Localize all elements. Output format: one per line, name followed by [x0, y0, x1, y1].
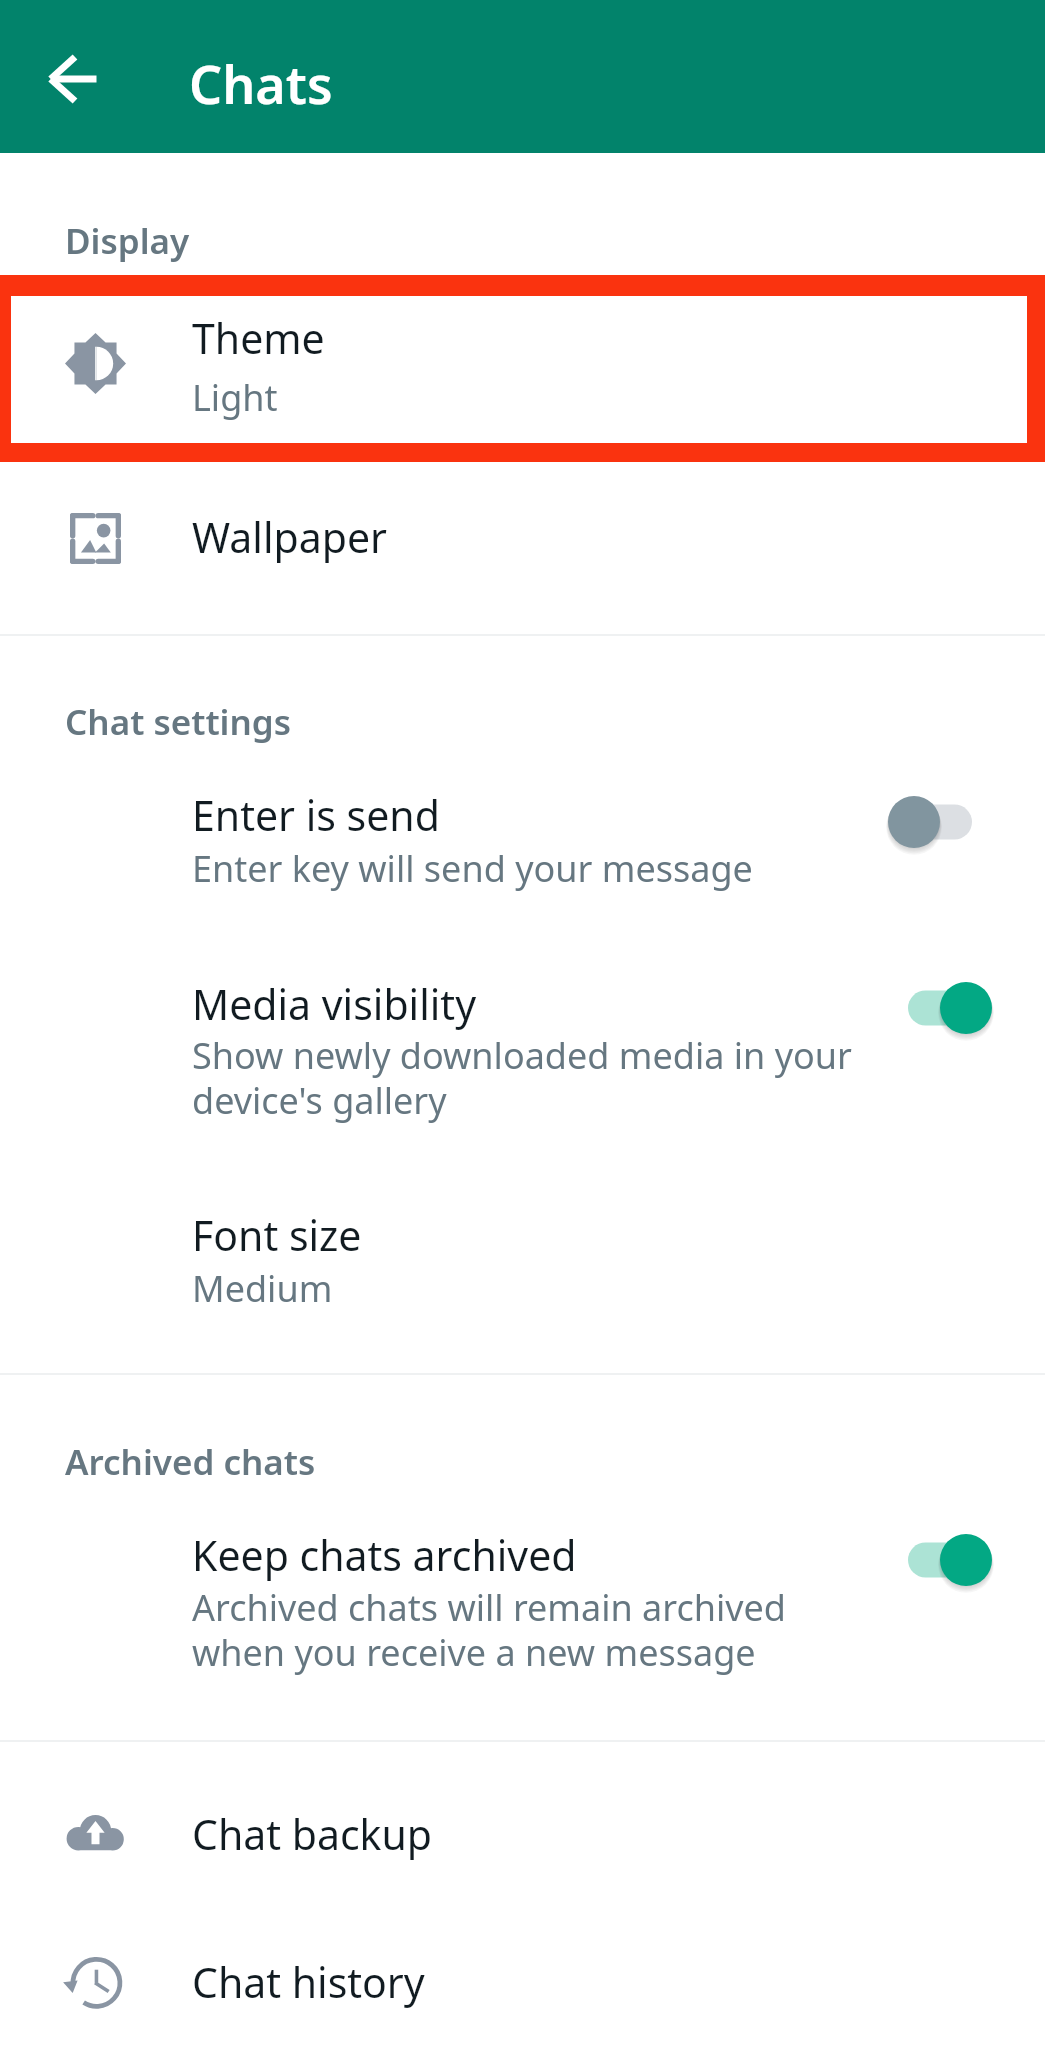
button[interactable]: Chat history	[0, 1916, 1045, 2046]
button[interactable]: Font size	[0, 1180, 1045, 1330]
button[interactable]: Toggle, on	[888, 1534, 992, 1586]
staticText: Theme	[192, 310, 325, 366]
button[interactable]: Wallpaper	[0, 470, 1045, 600]
staticText: Font size	[192, 1207, 362, 1263]
staticText: Media visibility	[192, 976, 477, 1032]
button[interactable]: Keep chats archived	[0, 1502, 1045, 1688]
staticText: Archived chats	[65, 1438, 316, 1486]
button[interactable]: Toggle, off	[888, 796, 992, 848]
staticText: Chat history	[192, 1954, 425, 2010]
button[interactable]: Enter is send	[0, 762, 1045, 902]
staticText: Enter is send	[192, 787, 440, 843]
button[interactable]: Media visibility	[0, 950, 1045, 1136]
staticText: Keep chats archived	[192, 1527, 577, 1583]
staticText: Enter key will send your message	[192, 844, 753, 893]
staticText: Light	[192, 373, 278, 422]
staticText: Show newly downloaded media in your devi…	[192, 1031, 862, 1124]
staticText: Wallpaper	[192, 509, 387, 565]
staticText: Chat settings	[65, 698, 291, 746]
button[interactable]: Theme	[11, 296, 1027, 443]
staticText: Archived chats will remain archived when…	[192, 1583, 802, 1676]
staticText: Display	[65, 217, 190, 265]
staticText: Medium	[192, 1264, 333, 1313]
staticText: Chats	[189, 48, 333, 119]
button[interactable]: Back	[25, 31, 121, 127]
button[interactable]: Chat backup	[0, 1768, 1045, 1898]
button[interactable]: Toggle, on	[888, 982, 992, 1034]
staticText: Chat backup	[192, 1806, 433, 1862]
